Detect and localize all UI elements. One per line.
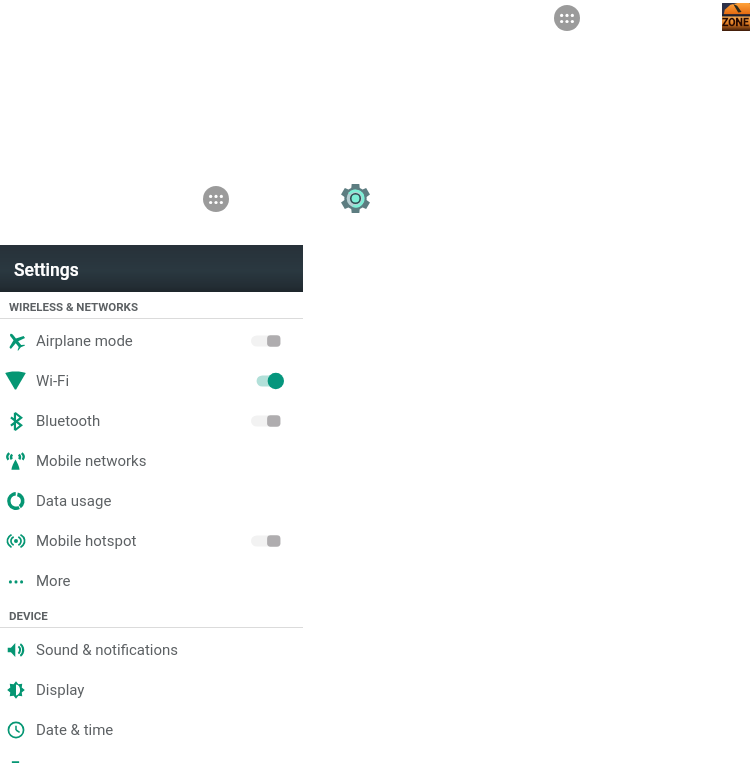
staticText: Settings [14,260,79,281]
staticText: WIRELESS & NETWORKS [9,300,138,313]
button[interactable]: More [0,561,303,601]
staticText: DEVICE [9,609,48,622]
staticText: More [36,572,71,590]
staticText: Bluetooth [36,412,101,430]
button[interactable]: Display [0,670,303,710]
button[interactable]: Airplane mode [0,321,303,361]
button[interactable]: Storage [0,750,303,763]
staticText: Airplane mode [36,332,133,350]
staticText: ZONE [722,16,750,28]
button[interactable]: Mobile hotspot [0,521,303,561]
button[interactable]: Settings [341,184,370,213]
button[interactable]: Bluetooth [0,401,303,441]
staticText: Sound & notifications [36,641,179,659]
button[interactable]: Data usage [0,481,303,521]
button[interactable]: Sound & notifications [0,630,303,670]
staticText: Wi-Fi [36,372,70,390]
staticText: Display [36,681,85,699]
staticText: Mobile networks [36,452,147,470]
button[interactable]: Apps [203,186,229,212]
button[interactable]: Settings [0,245,303,292]
staticText: Date & time [36,721,114,739]
staticText: Mobile hotspot [36,532,137,550]
button[interactable]: Zone app [722,3,750,31]
button[interactable]: Mobile networks [0,441,303,481]
button[interactable]: Wi-Fi [0,361,303,401]
button[interactable]: Apps [554,5,580,31]
staticText: Data usage [36,492,112,510]
button[interactable]: Date & time [0,710,303,750]
